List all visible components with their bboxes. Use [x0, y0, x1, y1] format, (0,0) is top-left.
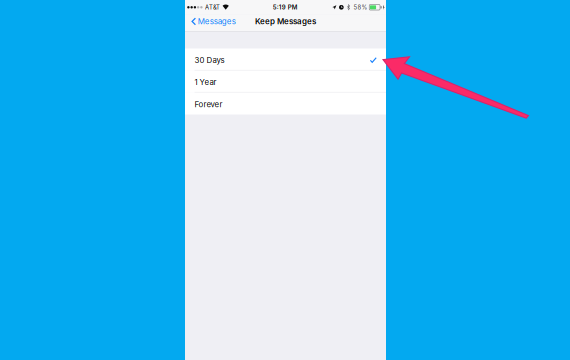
button[interactable]: Messages — [185, 15, 240, 31]
staticText: Messages — [198, 17, 236, 26]
staticText: Forever — [195, 100, 223, 109]
staticText: 5:19 PM — [273, 4, 298, 11]
staticText: Keep Messages — [255, 17, 316, 26]
staticText: AT&T — [205, 4, 220, 11]
button[interactable]: Forever — [185, 92, 386, 114]
staticText: 58% — [353, 4, 367, 11]
staticText: 30 Days — [195, 55, 225, 65]
staticText: 1 Year — [195, 77, 217, 87]
button[interactable]: 30 Days — [185, 48, 386, 70]
button[interactable]: 1 Year — [185, 70, 386, 92]
